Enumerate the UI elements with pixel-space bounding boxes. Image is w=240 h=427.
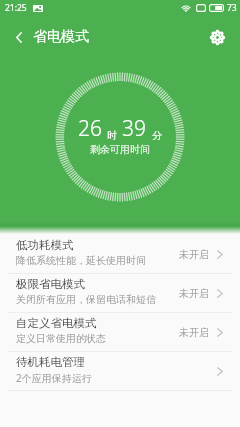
staticText: 自定义省电模式 <box>16 316 97 330</box>
button[interactable]: 待机耗电管理 <box>0 352 240 391</box>
staticText: 未开启 <box>179 287 209 300</box>
staticText: 低功耗模式 <box>16 238 74 252</box>
staticText: 关闭所有应用，保留电话和短信 <box>16 293 156 306</box>
staticText: 分 <box>152 129 162 142</box>
staticText: 剩余可用时间 <box>90 143 150 156</box>
staticText: 73 <box>227 2 237 14</box>
staticText: 时 <box>107 129 117 142</box>
staticText: 降低系统性能，延长使用时间 <box>16 254 146 267</box>
staticText: 39 <box>122 114 146 143</box>
staticText: 极限省电模式 <box>16 277 85 291</box>
staticText: 未开启 <box>179 248 209 261</box>
staticText: 待机耗电管理 <box>16 355 85 369</box>
staticText: 省电模式 <box>33 28 89 46</box>
staticText: 21:25 <box>5 2 27 14</box>
button[interactable]: Settings <box>202 18 240 56</box>
button[interactable]: 自定义省电模式 <box>0 313 240 352</box>
button[interactable]: Back <box>0 18 33 56</box>
staticText: 26 <box>78 114 102 143</box>
button[interactable]: 极限省电模式 <box>0 274 240 313</box>
staticText: 定义日常使用的状态 <box>16 332 106 345</box>
button[interactable]: 低功耗模式 <box>0 235 240 274</box>
staticText: 2个应用保持运行 <box>16 371 92 385</box>
staticText: 未开启 <box>179 326 209 339</box>
